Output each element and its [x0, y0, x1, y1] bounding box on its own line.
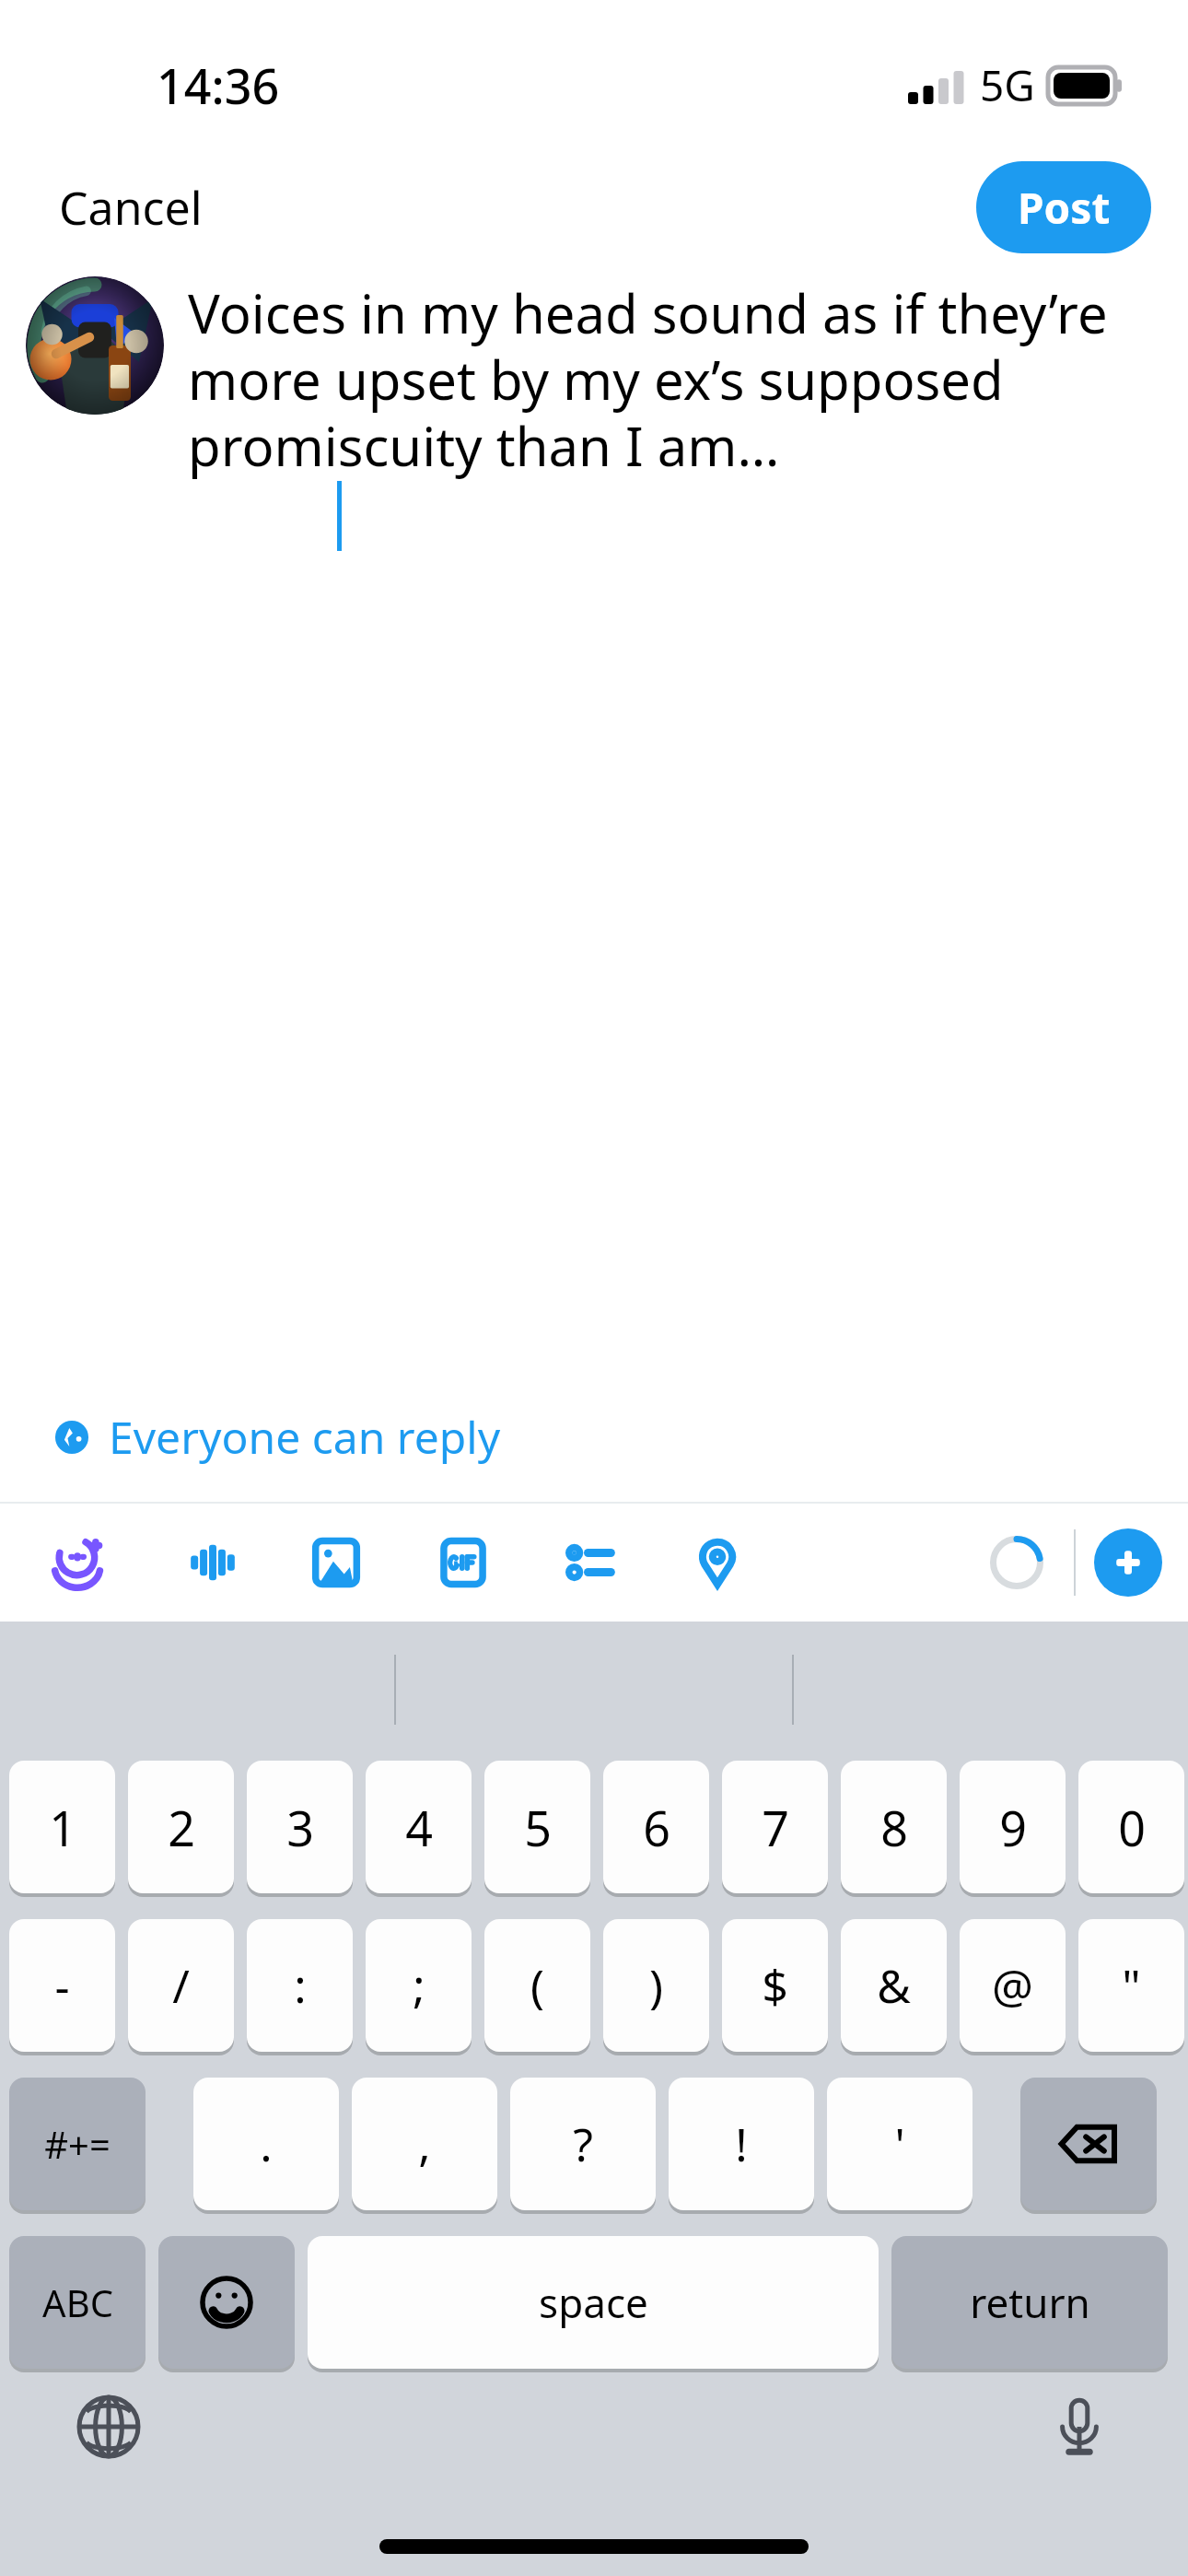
button[interactable]: ( — [484, 1919, 590, 2052]
staticText: ABC — [42, 2277, 113, 2327]
button[interactable]: Add Spaces — [18, 1512, 146, 1613]
staticText: 5G — [980, 56, 1035, 114]
button[interactable]: ABC — [9, 2236, 146, 2369]
staticText: 1 — [49, 1795, 76, 1860]
button[interactable]: 7 — [722, 1761, 828, 1893]
button[interactable]: 8 — [841, 1761, 947, 1893]
staticText: 8 — [880, 1795, 908, 1860]
staticText: #+= — [44, 2119, 111, 2169]
button[interactable]: 0 — [1078, 1761, 1184, 1893]
staticText: Post — [1018, 179, 1111, 237]
button[interactable]: $ — [722, 1919, 828, 2052]
staticText: 0 — [1118, 1795, 1146, 1860]
button[interactable]: ! — [669, 2078, 814, 2210]
staticText: 6 — [643, 1795, 670, 1860]
staticText: 2 — [168, 1795, 195, 1860]
staticText: 3 — [286, 1795, 314, 1860]
button[interactable]: return — [891, 2236, 1168, 2369]
staticText: : — [294, 1954, 307, 2017]
staticText: 14:36 — [157, 53, 280, 118]
staticText: ? — [573, 2113, 593, 2175]
button[interactable]: " — [1078, 1919, 1184, 2052]
button[interactable]: Add GIF — [400, 1512, 527, 1613]
staticText: space — [539, 2275, 648, 2330]
staticText: 9 — [999, 1795, 1027, 1860]
button[interactable]: , — [352, 2078, 497, 2210]
button[interactable]: #+= — [9, 2078, 146, 2210]
button[interactable]: Character count — [974, 1520, 1059, 1605]
staticText: - — [54, 1954, 70, 2017]
staticText: Voices in my head sound as if they’re mo… — [188, 276, 1151, 482]
button[interactable]: Emoji — [158, 2236, 295, 2369]
button[interactable]: Everyone can reply — [41, 1398, 512, 1476]
staticText: Cancel — [59, 176, 203, 239]
button[interactable]: Post — [976, 161, 1151, 253]
staticText: ) — [649, 1954, 663, 2017]
button[interactable]: space — [308, 2236, 879, 2369]
button[interactable]: Add post — [1094, 1528, 1162, 1597]
button[interactable]: 2 — [128, 1761, 234, 1893]
button[interactable]: 1 — [9, 1761, 115, 1893]
button[interactable]: / — [128, 1919, 234, 2052]
button[interactable]: & — [841, 1919, 947, 2052]
button[interactable]: Add photo — [273, 1512, 400, 1613]
staticText: 4 — [405, 1795, 433, 1860]
button[interactable]: ? — [510, 2078, 656, 2210]
button[interactable]: 4 — [366, 1761, 472, 1893]
button[interactable]: Add location — [654, 1512, 781, 1613]
staticText: return — [970, 2275, 1090, 2330]
staticText: ! — [735, 2113, 748, 2175]
staticText: " — [1122, 1954, 1141, 2017]
staticText: / — [172, 1954, 190, 2017]
staticText: ' — [894, 2113, 905, 2175]
staticText: ; — [413, 1954, 425, 2017]
staticText: $ — [762, 1954, 788, 2017]
staticText: 5 — [524, 1795, 552, 1860]
button[interactable]: - — [9, 1919, 115, 2052]
button[interactable]: Dictation — [1035, 2383, 1124, 2471]
button[interactable]: 5 — [484, 1761, 590, 1893]
button[interactable]: 3 — [247, 1761, 353, 1893]
button[interactable]: ; — [366, 1919, 472, 2052]
button[interactable]: . — [193, 2078, 339, 2210]
button[interactable]: 6 — [603, 1761, 709, 1893]
button[interactable]: : — [247, 1919, 353, 2052]
staticText: @ — [992, 1954, 1033, 2017]
button[interactable]: 9 — [960, 1761, 1066, 1893]
button[interactable]: Backspace — [1020, 2078, 1157, 2210]
staticText: 7 — [762, 1795, 789, 1860]
button[interactable]: ) — [603, 1919, 709, 2052]
staticText: & — [877, 1954, 911, 2017]
other: Profile picture — [26, 276, 164, 415]
button[interactable]: ' — [827, 2078, 973, 2210]
staticText: . — [260, 2113, 273, 2175]
button[interactable]: Cancel — [37, 165, 225, 250]
button[interactable]: Change keyboard language — [64, 2383, 153, 2471]
button[interactable]: Audio — [146, 1512, 273, 1613]
staticText: Everyone can reply — [109, 1407, 501, 1467]
staticText: ( — [530, 1954, 544, 2017]
button[interactable]: Add poll — [527, 1512, 654, 1613]
button[interactable]: @ — [960, 1919, 1066, 2052]
staticText: , — [418, 2113, 431, 2175]
